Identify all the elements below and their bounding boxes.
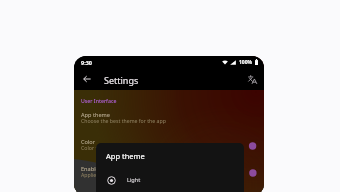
staticText: Applied to all screens [81,171,133,178]
button[interactable]: App theme [78,107,250,133]
button[interactable]: Translate [245,72,259,86]
staticText: Enable dark mode [81,165,129,173]
staticText: App theme [106,151,145,161]
staticText: User Interface [81,97,117,104]
staticText: Light [127,176,141,184]
staticText: Color theme of the app [81,144,138,151]
button[interactable]: Back [80,72,94,86]
button[interactable]: Light [96,170,244,190]
staticText: 9:30 [81,59,92,66]
staticText: Settings [104,74,139,86]
button[interactable]: Color [78,134,250,160]
staticText: App theme [81,111,110,119]
staticText: Color [81,138,96,146]
button[interactable]: Enable dark mode [78,161,250,187]
staticText: 100% [239,59,253,66]
staticText: Choose the best theme for the app [81,117,166,124]
